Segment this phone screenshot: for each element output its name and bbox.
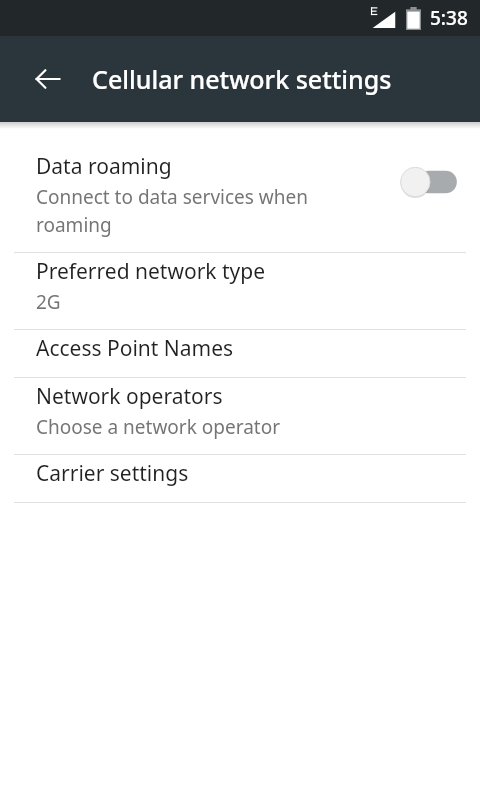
staticText: Data roaming <box>36 152 172 181</box>
staticText: Preferred network type <box>36 257 266 286</box>
staticText: 5:38 <box>430 5 468 31</box>
staticText: roaming <box>36 212 112 238</box>
button[interactable]: Access Point Names <box>0 330 480 377</box>
staticText: 2G <box>36 289 61 315</box>
staticText: Access Point Names <box>36 334 234 363</box>
button[interactable]: Preferred network type <box>0 253 480 329</box>
button[interactable]: Back <box>22 53 74 105</box>
button[interactable]: Data roaming <box>0 148 480 252</box>
button[interactable]: Carrier settings <box>0 455 480 502</box>
button[interactable]: Network operators <box>0 378 480 454</box>
staticText: Network operators <box>36 382 223 411</box>
staticText: Cellular network settings <box>92 62 392 96</box>
staticText: Connect to data services when <box>36 184 308 210</box>
button[interactable]: Data roaming toggle <box>400 166 458 198</box>
staticText: Choose a network operator <box>36 414 280 440</box>
staticText: Carrier settings <box>36 459 189 488</box>
